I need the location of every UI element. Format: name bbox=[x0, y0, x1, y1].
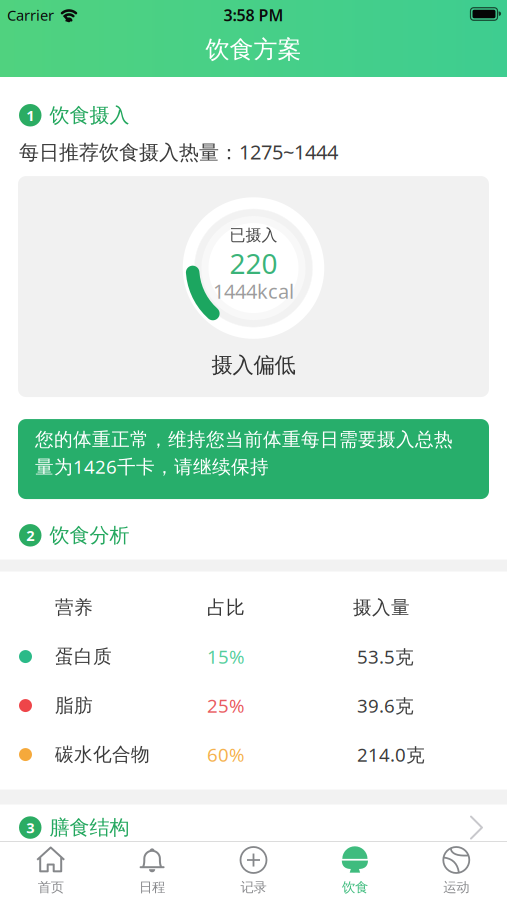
staticText: 饮食分析 bbox=[49, 523, 129, 548]
staticText: 您的体重正常，维持您当前体重每日需要摄入总热 bbox=[35, 428, 453, 451]
button[interactable]: 首页 bbox=[0, 842, 101, 900]
staticText: 记录 bbox=[240, 879, 266, 895]
staticText: 15% bbox=[207, 644, 245, 669]
staticText: 脂肪 bbox=[55, 694, 93, 717]
staticText: 首页 bbox=[38, 879, 64, 895]
staticText: 摄入量 bbox=[353, 596, 410, 619]
staticText: 53.5克 bbox=[357, 644, 414, 669]
staticText: 3 bbox=[26, 818, 34, 837]
staticText: 60% bbox=[207, 742, 245, 767]
staticText: Carrier bbox=[7, 5, 54, 25]
button[interactable]: 运动 bbox=[406, 842, 507, 900]
staticText: 39.6克 bbox=[357, 693, 414, 718]
staticText: 已摄入 bbox=[229, 225, 277, 245]
button[interactable]: 3 bbox=[0, 816, 507, 840]
staticText: 3:58 PM bbox=[223, 4, 283, 26]
staticText: 运动 bbox=[443, 879, 469, 895]
staticText: 量为1426千卡，请继续保持 bbox=[35, 454, 269, 479]
staticText: 日程 bbox=[139, 879, 165, 895]
staticText: 占比 bbox=[207, 596, 245, 619]
staticText: 蛋白质 bbox=[55, 645, 112, 668]
staticText: 每日推荐饮食摄入热量：1275~1444 bbox=[19, 138, 338, 165]
staticText: 饮食方案 bbox=[205, 35, 301, 64]
staticText: 1444kcal bbox=[213, 278, 294, 304]
staticText: 1 bbox=[26, 105, 34, 125]
staticText: 220 bbox=[229, 244, 277, 282]
staticText: 膳食结构 bbox=[49, 815, 129, 840]
staticText: 214.0克 bbox=[357, 742, 425, 767]
staticText: 饮食摄入 bbox=[49, 103, 129, 128]
staticText: 营养 bbox=[55, 596, 93, 619]
staticText: 碳水化合物 bbox=[55, 743, 150, 766]
button[interactable]: 记录 bbox=[203, 842, 304, 900]
staticText: 摄入偏低 bbox=[211, 352, 295, 378]
staticText: 饮食 bbox=[342, 879, 368, 895]
staticText: 25% bbox=[207, 693, 245, 718]
staticText: 2 bbox=[26, 526, 34, 545]
button[interactable]: 日程 bbox=[101, 842, 203, 900]
button[interactable]: 饮食 bbox=[304, 842, 406, 900]
